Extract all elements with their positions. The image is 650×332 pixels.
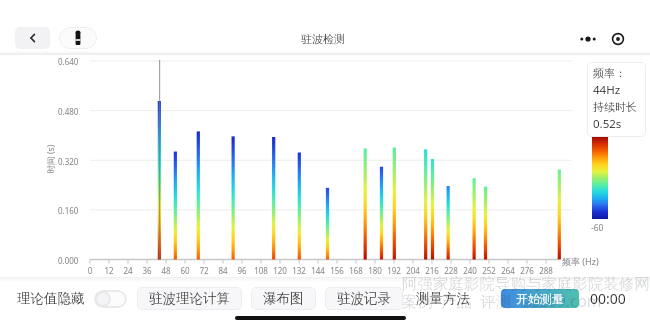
staticText: 阿强家庭影院导购与家庭影院装修网 — [402, 274, 650, 294]
staticText: 288 — [537, 265, 555, 276]
staticText: 132 — [290, 265, 308, 276]
staticText: 驻波理论计算 — [149, 290, 230, 307]
button[interactable]: 驻波记录 — [325, 287, 403, 310]
staticText: 168 — [347, 265, 365, 276]
staticText: 180 — [366, 265, 384, 276]
staticText: 0.160 — [58, 205, 79, 216]
button[interactable]: Start recording — [607, 28, 629, 50]
button[interactable]: Toggle theory value — [94, 290, 127, 308]
staticText: 时间 (s) — [45, 138, 57, 180]
staticText: 0.000 — [58, 255, 79, 266]
staticText: 264 — [499, 265, 517, 276]
button[interactable]: 驻波理论计算 — [137, 287, 242, 310]
staticText: 276 — [518, 265, 536, 276]
staticText: 频率 (Hz) — [562, 255, 599, 267]
staticText: 瀑布图 — [263, 290, 304, 307]
button[interactable]: 开始测量 — [501, 289, 579, 308]
staticText: 0.320 — [58, 156, 79, 167]
staticText: 0.52s — [593, 116, 622, 132]
staticText: 228 — [442, 265, 460, 276]
staticText: 持续时长 — [593, 100, 637, 114]
staticText: 驻波记录 — [337, 290, 391, 307]
staticText: 252 — [480, 265, 498, 276]
staticText: 240 — [461, 265, 479, 276]
staticText: 理论值隐藏 — [17, 290, 85, 307]
button[interactable]: 瀑布图 — [251, 287, 316, 310]
button[interactable]: Device — [59, 27, 97, 49]
staticText: 开始测量 — [516, 291, 564, 306]
staticText: 驻波检测 — [301, 32, 345, 46]
staticText: 0.480 — [58, 106, 79, 117]
staticText: 60 — [176, 265, 194, 276]
staticText: 48 — [157, 265, 175, 276]
staticText: 96 — [233, 265, 251, 276]
staticText: 192 — [385, 265, 403, 276]
staticText: 00:00 — [590, 289, 626, 308]
staticText: 44Hz — [593, 82, 621, 98]
staticText: 144 — [309, 265, 327, 276]
staticText: 72 — [195, 265, 213, 276]
staticText: 204 — [404, 265, 422, 276]
staticText: 120 — [271, 265, 289, 276]
button[interactable]: Back — [15, 27, 50, 49]
staticText: 频率： — [593, 66, 626, 80]
button[interactable]: More options — [575, 28, 601, 50]
staticText: 36 — [138, 265, 156, 276]
staticText: 216 — [423, 265, 441, 276]
staticText: 84 — [214, 265, 232, 276]
staticText: 12 — [100, 265, 118, 276]
button[interactable]: 测量方法 — [416, 290, 470, 307]
staticText: 案例 产品 评测 az269.com — [402, 290, 602, 311]
staticText: 108 — [252, 265, 270, 276]
staticText: 156 — [328, 265, 346, 276]
staticText: -60 — [591, 222, 604, 234]
staticText: 24 — [119, 265, 137, 276]
staticText: 0 — [81, 265, 99, 276]
staticText: 0.640 — [58, 56, 79, 67]
